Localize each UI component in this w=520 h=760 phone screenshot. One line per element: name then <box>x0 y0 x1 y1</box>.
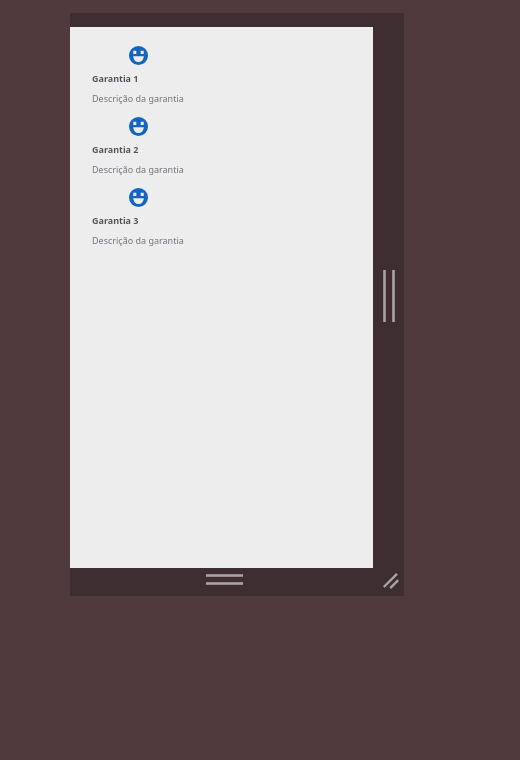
button[interactable]: Garantia <box>70 46 373 117</box>
button[interactable]: Garantia <box>70 117 373 188</box>
staticText: Descrição da garantia <box>92 234 184 246</box>
other: Garantia <box>129 188 148 207</box>
staticText: Descrição da garantia <box>92 92 184 104</box>
button[interactable]: Resize <box>381 571 401 591</box>
staticText: Garantia 2 <box>92 143 139 155</box>
button[interactable]: Garantia <box>70 188 373 259</box>
staticText: Garantia 3 <box>92 214 139 226</box>
staticText: Garantia 1 <box>92 72 139 84</box>
staticText: Descrição da garantia <box>92 163 184 175</box>
button[interactable]: Resize width <box>382 270 396 322</box>
other: Garantia <box>129 117 148 136</box>
other: Garantia <box>129 46 148 65</box>
button[interactable]: Resize height <box>206 573 243 586</box>
